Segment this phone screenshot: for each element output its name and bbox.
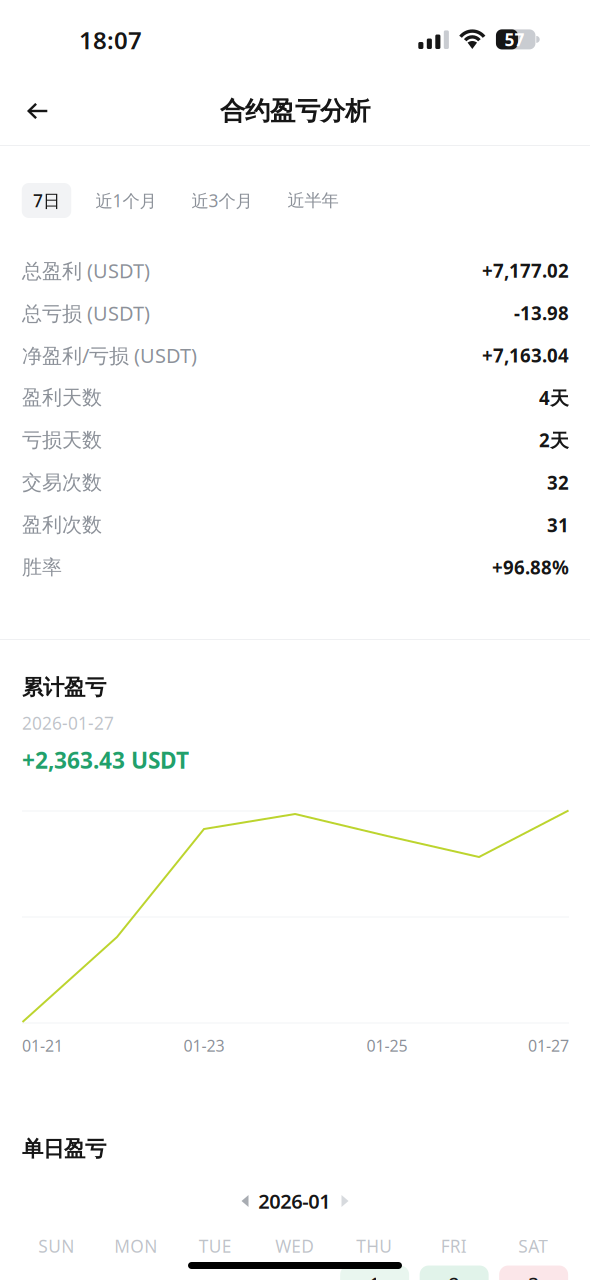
staticText: 近半年 <box>287 190 338 211</box>
staticText: 盈利天数 <box>22 385 102 410</box>
staticText: SAT <box>518 1234 548 1257</box>
staticText: WED <box>275 1234 314 1257</box>
staticText: THU <box>356 1234 392 1257</box>
staticText: MON <box>114 1234 157 1257</box>
staticText: 2天 <box>539 428 569 452</box>
button[interactable]: 近3个月 <box>184 183 260 218</box>
staticText: 亏损天数 <box>22 428 102 452</box>
staticText: 近3个月 <box>191 189 252 212</box>
button[interactable]: 近半年 <box>282 183 344 218</box>
button[interactable]: Next month <box>331 1187 359 1215</box>
staticText: 单日盈亏 <box>22 1136 106 1162</box>
staticText: 01-25 <box>366 1035 407 1056</box>
staticText: 7日 <box>33 189 60 212</box>
button[interactable]: Back <box>10 83 66 139</box>
staticText: SUN <box>38 1234 74 1257</box>
staticText: 交易次数 <box>22 470 102 495</box>
staticText: TUE <box>199 1234 232 1257</box>
staticText: 2026-01-27 <box>22 711 114 734</box>
staticText: 胜率 <box>22 555 62 580</box>
button[interactable]: 3 <box>494 1265 573 1280</box>
staticText: 盈利次数 <box>22 513 102 537</box>
staticText: 1 <box>369 1271 380 1280</box>
staticText: +7,163.04 <box>482 343 569 368</box>
button[interactable]: Previous month <box>231 1187 259 1215</box>
button[interactable]: 7日 <box>22 183 71 218</box>
button[interactable]: 近1个月 <box>88 183 164 218</box>
staticText: 01-27 <box>528 1035 569 1056</box>
staticText: 32 <box>547 470 569 495</box>
button[interactable]: 2 <box>414 1265 494 1280</box>
staticText: 合约盈亏分析 <box>220 95 370 126</box>
staticText: 累计盈亏 <box>22 674 106 701</box>
staticText: -13.98 <box>514 300 569 325</box>
staticText: 01-21 <box>22 1035 63 1056</box>
staticText: 01-23 <box>183 1035 224 1056</box>
staticText: 2 <box>449 1271 460 1280</box>
staticText: 57 <box>504 28 524 51</box>
staticText: 3 <box>528 1271 539 1280</box>
staticText: +2,363.43 USDT <box>22 745 189 775</box>
staticText: +96.88% <box>492 555 569 580</box>
staticText: 近1个月 <box>95 189 156 212</box>
staticText: +7,177.02 <box>482 258 569 283</box>
staticText: 31 <box>547 512 569 537</box>
staticText: 2026-01 <box>258 1188 330 1214</box>
staticText: 净盈利/亏损 (USDT) <box>22 342 197 369</box>
button[interactable]: 1 <box>335 1265 414 1280</box>
staticText: 总亏损 (USDT) <box>22 300 150 326</box>
staticText: 18:07 <box>79 24 142 56</box>
staticText: 4天 <box>539 385 569 410</box>
staticText: FRI <box>441 1234 467 1257</box>
staticText: 总盈利 (USDT) <box>22 257 150 284</box>
